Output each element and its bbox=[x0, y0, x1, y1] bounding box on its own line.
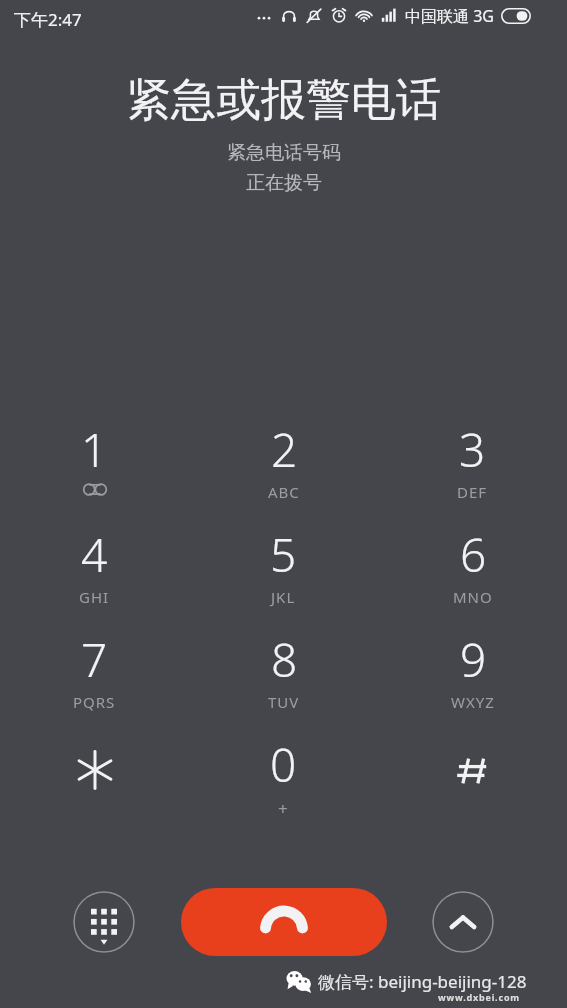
button[interactable] bbox=[378, 733, 567, 838]
button[interactable]: End call bbox=[181, 888, 387, 956]
button[interactable]: Expand bbox=[432, 891, 494, 953]
staticText: 3 bbox=[459, 418, 486, 481]
staticText: + bbox=[278, 797, 289, 820]
staticText: 中国联通 3G bbox=[405, 5, 494, 27]
staticText: 1 bbox=[81, 418, 108, 481]
staticText: 0 bbox=[270, 733, 297, 796]
staticText: 下午2:47 bbox=[14, 8, 82, 31]
button[interactable]: 5 bbox=[189, 523, 378, 628]
staticText: WXYZ bbox=[451, 692, 495, 712]
staticText: 7 bbox=[81, 628, 108, 691]
staticText: 紧急或报警电话 bbox=[126, 72, 441, 129]
staticText: 微信号: beijing-beijing-128 bbox=[318, 970, 527, 993]
staticText: www.dxbei.com bbox=[438, 991, 520, 1003]
staticText: 4 bbox=[81, 523, 108, 586]
button[interactable]: 1 bbox=[0, 418, 189, 523]
staticText: 6 bbox=[460, 523, 487, 586]
staticText: TUV bbox=[268, 692, 300, 712]
staticText: ABC bbox=[268, 482, 300, 502]
staticText: MNO bbox=[453, 587, 493, 607]
staticText: 2 bbox=[271, 418, 298, 481]
staticText: 8 bbox=[271, 628, 298, 691]
button[interactable]: Hide dialpad bbox=[73, 891, 135, 953]
staticText: 正在拨号 bbox=[246, 171, 322, 195]
staticText: GHI bbox=[79, 587, 110, 607]
button[interactable]: 2 bbox=[189, 418, 378, 523]
button[interactable]: 6 bbox=[378, 523, 567, 628]
staticText: DEF bbox=[457, 482, 488, 502]
staticText: 5 bbox=[270, 523, 297, 586]
button[interactable]: 7 bbox=[0, 628, 189, 733]
button[interactable]: 0 bbox=[189, 733, 378, 838]
staticText: 9 bbox=[460, 628, 487, 691]
staticText: JKL bbox=[271, 587, 296, 607]
button[interactable]: 4 bbox=[0, 523, 189, 628]
button[interactable]: 9 bbox=[378, 628, 567, 733]
staticText: PQRS bbox=[73, 692, 116, 712]
button[interactable] bbox=[0, 733, 189, 838]
staticText: 紧急电话号码 bbox=[227, 141, 341, 165]
button[interactable]: 8 bbox=[189, 628, 378, 733]
button[interactable]: 3 bbox=[378, 418, 567, 523]
